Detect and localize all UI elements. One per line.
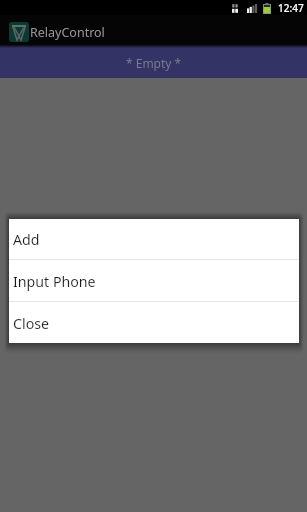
button[interactable]: Input Phone	[9, 260, 299, 301]
button[interactable]: RelayControl app icon	[0, 15, 96, 45]
staticText: RelayControl	[30, 24, 105, 41]
staticText: * Empty *	[126, 55, 182, 71]
staticText: 12:47	[278, 1, 304, 15]
button[interactable]: Add	[9, 219, 299, 259]
staticText: Close	[13, 314, 50, 333]
button[interactable]: * Empty *	[0, 45, 307, 78]
staticText: Input Phone	[13, 272, 96, 291]
staticText: Add	[13, 230, 40, 249]
button[interactable]: Close	[9, 302, 299, 343]
other: RelayControl app icon	[9, 22, 29, 42]
